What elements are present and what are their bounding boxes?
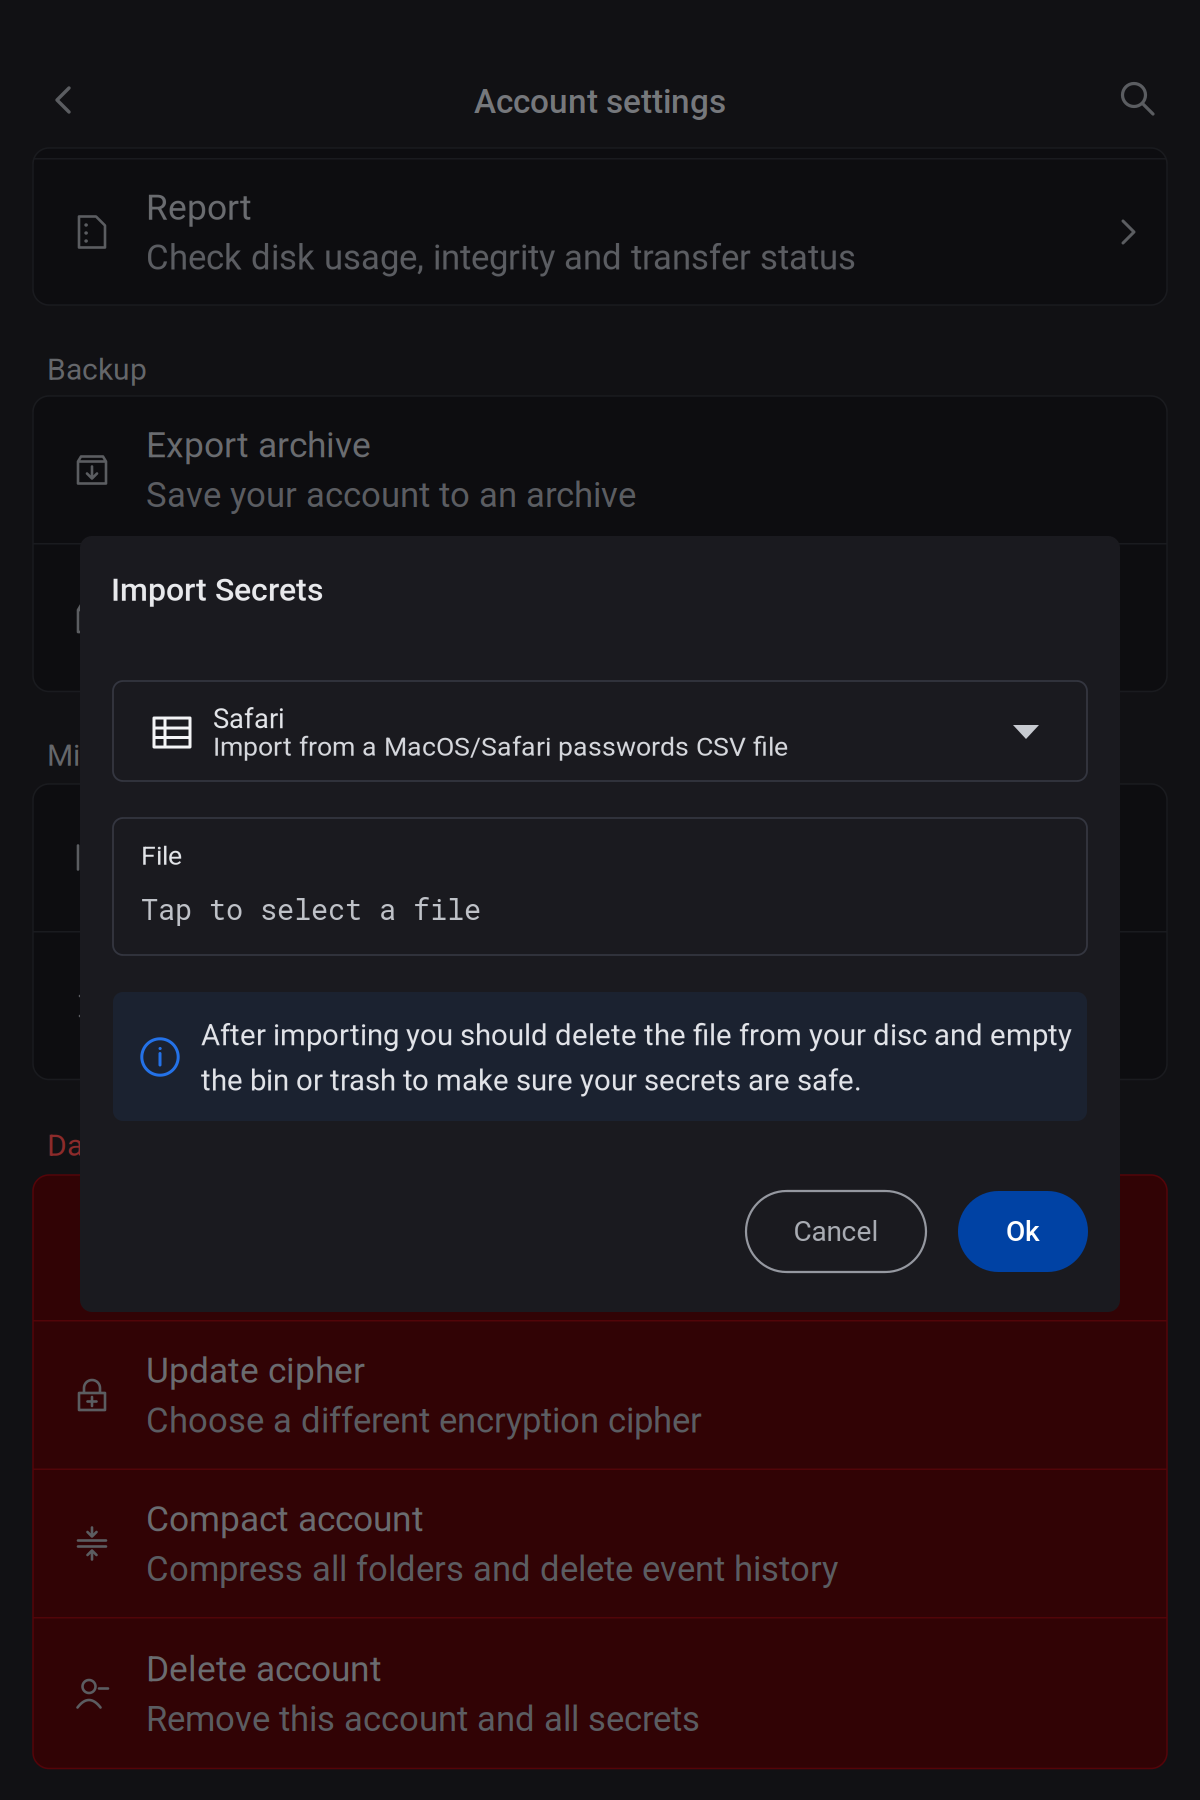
- button[interactable]: Ok: [958, 1191, 1088, 1272]
- staticText: Tap to select a file: [141, 890, 481, 928]
- staticText: Update cipher: [146, 1350, 365, 1391]
- button[interactable]: Move account: [33, 784, 1167, 931]
- staticText: After importing you should delete the fi…: [201, 1018, 1072, 1098]
- staticText: Remove this account and all secrets: [146, 1699, 700, 1739]
- staticText: Delete account: [146, 1648, 382, 1690]
- staticText: Save your account to an archive: [146, 475, 636, 515]
- staticText: Danger zone: [47, 1128, 215, 1163]
- button[interactable]: Compact account: [33, 1470, 1167, 1617]
- staticText: Export archive: [146, 424, 371, 466]
- staticText: Compress all folders and delete event hi…: [146, 1549, 838, 1589]
- staticText: Detach this device from the account: [146, 1011, 699, 1052]
- button[interactable]: Delete account: [33, 1618, 1167, 1768]
- staticText: Ok: [1006, 1215, 1040, 1248]
- staticText: Migration: [47, 738, 174, 773]
- button[interactable]: Reset password: [33, 1175, 1167, 1320]
- button[interactable]: Update cipher: [33, 1321, 1167, 1468]
- button[interactable]: Report: [33, 159, 1167, 305]
- button[interactable]: Back: [25, 62, 101, 138]
- staticText: Move this account to another server: [146, 863, 700, 903]
- staticText: Import from a MacOS/Safari passwords CSV…: [213, 731, 788, 762]
- staticText: Cancel: [793, 1215, 878, 1248]
- staticText: Move account: [146, 812, 368, 854]
- staticText: Choose a different encryption cipher: [146, 1400, 702, 1441]
- button[interactable]: Unlink device: [33, 932, 1167, 1079]
- staticText: Backup: [47, 352, 147, 387]
- staticText: Check disk usage, integrity and transfer…: [146, 237, 856, 278]
- staticText: Compact account: [146, 1498, 424, 1540]
- staticText: File: [141, 840, 182, 871]
- staticText: Report: [146, 187, 252, 228]
- button[interactable]: File: [113, 818, 1087, 955]
- button[interactable]: Export archive: [33, 396, 1167, 543]
- button[interactable]: Safari: [113, 681, 1087, 781]
- staticText: Unlink device: [146, 961, 356, 1002]
- button[interactable]: Cancel: [746, 1191, 926, 1272]
- staticText: Import Secrets: [111, 571, 323, 608]
- staticText: Import secrets: [146, 573, 377, 614]
- staticText: Safari: [213, 703, 285, 735]
- button[interactable]: Import secrets: [33, 544, 1167, 691]
- button[interactable]: Search: [1100, 62, 1176, 138]
- staticText: Account settings: [474, 82, 726, 121]
